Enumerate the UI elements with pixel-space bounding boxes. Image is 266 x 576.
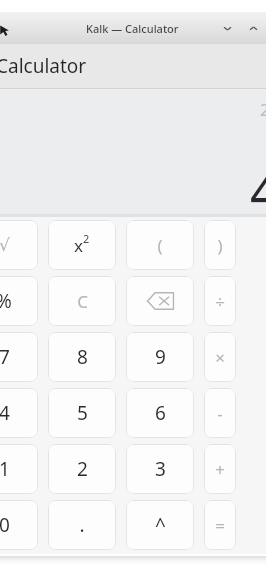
button[interactable]: ) xyxy=(204,220,236,270)
button[interactable]: √ xyxy=(0,220,38,270)
staticText: × xyxy=(215,346,225,369)
button[interactable]: Expand xyxy=(240,15,266,41)
staticText: 4 xyxy=(250,155,266,226)
button[interactable]: x xyxy=(48,220,116,270)
staticText: 0 xyxy=(0,512,10,538)
button[interactable]: 8 xyxy=(48,332,116,382)
button[interactable]: ^ xyxy=(126,500,194,550)
staticText: 5 xyxy=(77,400,88,426)
staticText: = xyxy=(215,514,225,537)
staticText: ^ xyxy=(155,512,166,538)
staticText: 3 xyxy=(155,456,166,482)
staticText: Kalk — Calculator xyxy=(86,21,179,36)
button[interactable]: + xyxy=(204,444,236,494)
staticText: 2 xyxy=(83,231,90,246)
button[interactable]: 7 xyxy=(0,332,38,382)
staticText: 9 xyxy=(155,344,166,370)
staticText: - xyxy=(217,402,223,425)
button[interactable]: Backspace xyxy=(126,276,194,326)
button[interactable]: 0 xyxy=(0,500,38,550)
button[interactable]: . xyxy=(48,500,116,550)
staticText: ÷ xyxy=(215,290,225,313)
button[interactable]: 5 xyxy=(48,388,116,438)
button[interactable]: 9 xyxy=(126,332,194,382)
staticText: 1 xyxy=(0,456,10,482)
button[interactable]: ( xyxy=(126,220,194,270)
button[interactable]: 1 xyxy=(0,444,38,494)
button[interactable]: % xyxy=(0,276,38,326)
staticText: √ xyxy=(0,235,10,255)
staticText: ) xyxy=(217,234,223,257)
staticText: + xyxy=(215,458,225,481)
staticText: Calculator xyxy=(0,53,87,79)
button[interactable]: Collapse xyxy=(214,15,240,41)
button[interactable]: 2 xyxy=(48,444,116,494)
button[interactable]: - xyxy=(204,388,236,438)
staticText: 2 xyxy=(77,456,88,482)
staticText: . xyxy=(79,512,85,538)
staticText: 21 xyxy=(260,98,266,121)
button[interactable]: = xyxy=(204,500,236,550)
staticText: x xyxy=(74,234,83,257)
staticText: C xyxy=(77,290,88,313)
button[interactable]: C xyxy=(48,276,116,326)
button[interactable]: 6 xyxy=(126,388,194,438)
staticText: 7 xyxy=(0,344,10,370)
button[interactable]: 4 xyxy=(0,388,38,438)
button[interactable]: 3 xyxy=(126,444,194,494)
staticText: 6 xyxy=(155,400,166,426)
staticText: 4 xyxy=(0,400,10,426)
staticText: ( xyxy=(157,234,163,257)
button[interactable]: ÷ xyxy=(204,276,236,326)
staticText: 8 xyxy=(77,344,88,370)
button[interactable]: × xyxy=(204,332,236,382)
staticText: % xyxy=(0,288,12,314)
